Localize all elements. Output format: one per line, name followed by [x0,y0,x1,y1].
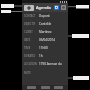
staticText: DATE [24,38,37,42]
staticText: 11h00 [39,46,66,50]
staticText: OBJECTIF [24,22,37,26]
staticText: CLIENT [24,30,37,34]
staticText: CONTACT [24,14,37,18]
button[interactable]: DURATION [22,52,68,60]
staticText: DURATION [24,54,37,58]
staticText: LOCATION [24,62,37,66]
button[interactable]: OBJECTIF [22,20,68,28]
button[interactable]: CONTACT [22,12,68,20]
button[interactable]: TIME [22,44,68,52]
staticText: TIME [24,46,37,50]
button[interactable]: Save [54,5,59,10]
staticText: Dupont [39,14,66,18]
button[interactable]: Back [24,5,34,11]
button[interactable]: LOCATION [22,60,68,68]
button[interactable]: DATE [22,36,68,44]
staticText: Agenda [36,5,54,10]
staticText: 06/04/2014 [39,38,66,42]
staticText: Martinez [39,30,66,34]
staticText: Contrôle [39,22,66,26]
button[interactable]: More options [61,5,66,10]
staticText: 1h [39,54,66,58]
staticText: 1750 Avenue du Centre Sud [39,62,66,66]
staticText: NOTE [24,71,37,75]
button[interactable]: CLIENT [22,28,68,36]
button[interactable]: NOTE [22,68,68,78]
